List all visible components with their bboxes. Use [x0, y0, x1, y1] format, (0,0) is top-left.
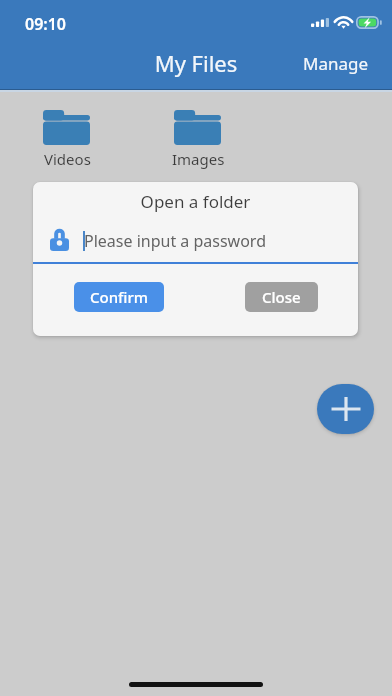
- staticText: Manage: [303, 52, 369, 75]
- staticText: Videos: [44, 149, 91, 169]
- staticText: My Files: [0, 48, 392, 78]
- button[interactable]: Add: [317, 384, 374, 434]
- staticText: Confirm: [90, 287, 149, 307]
- button[interactable]: Confirm: [74, 282, 164, 312]
- button[interactable]: Close: [245, 282, 318, 312]
- staticText: Close: [262, 287, 301, 307]
- staticText: Images: [172, 149, 225, 169]
- button[interactable]: Images: [164, 106, 229, 169]
- staticText: Open a folder: [33, 190, 358, 213]
- staticText: Please input a password: [84, 230, 267, 252]
- button[interactable]: Manage: [291, 46, 381, 81]
- staticText: 09:10: [25, 13, 67, 35]
- button[interactable]: Videos: [33, 106, 98, 169]
